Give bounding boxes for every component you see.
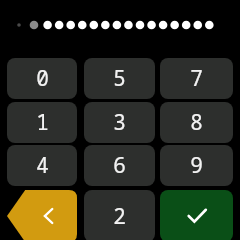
button[interactable]: Confirm: [160, 190, 233, 240]
button[interactable]: 0: [7, 58, 77, 99]
staticText: 7: [190, 64, 203, 93]
staticText: 3: [113, 108, 126, 137]
staticText: 6: [113, 151, 126, 180]
button[interactable]: 2: [84, 190, 155, 240]
button[interactable]: 4: [7, 145, 77, 186]
button[interactable]: 8: [160, 102, 233, 143]
button[interactable]: 6: [84, 145, 155, 186]
button[interactable]: 3: [84, 102, 155, 143]
staticText: 4: [36, 151, 49, 180]
button[interactable]: 1: [7, 102, 77, 143]
staticText: 5: [113, 64, 126, 93]
button[interactable]: 9: [160, 145, 233, 186]
staticText: 0: [36, 64, 49, 93]
staticText: 2: [113, 202, 126, 231]
staticText: 9: [190, 151, 203, 180]
button[interactable]: 5: [84, 58, 155, 99]
staticText: 1: [36, 108, 49, 137]
button[interactable]: 7: [160, 58, 233, 99]
button[interactable]: Delete: [7, 190, 77, 240]
staticText: 8: [190, 108, 203, 137]
